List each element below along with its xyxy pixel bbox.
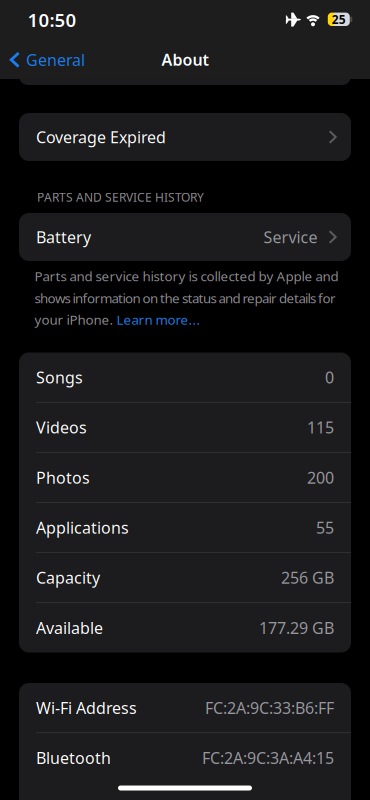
- staticText: Battery: [36, 226, 91, 248]
- staticText: Photos: [36, 467, 90, 488]
- staticText: Available: [36, 617, 103, 638]
- button[interactable]: General: [10, 49, 85, 70]
- staticText: Applications: [36, 517, 129, 538]
- staticText: General: [26, 49, 85, 70]
- button[interactable]: Coverage Expired: [19, 113, 351, 161]
- staticText: FC:2A:9C:3A:A4:15: [202, 747, 334, 768]
- staticText: Wi-Fi Address: [36, 697, 137, 718]
- staticText: Parts and service history is collected b…: [34, 267, 338, 285]
- staticText: 256 GB: [281, 567, 334, 588]
- staticText: FC:2A:9C:33:B6:FF: [205, 697, 334, 718]
- button[interactable]: Learn more...: [116, 311, 200, 328]
- staticText: Learn more...: [116, 311, 200, 328]
- staticText: Service: [263, 226, 317, 248]
- staticText: Capacity: [36, 567, 100, 588]
- staticText: PARTS AND SERVICE HISTORY: [37, 189, 204, 205]
- staticText: 177.29 GB: [259, 617, 334, 638]
- staticText: 0: [325, 367, 334, 388]
- staticText: 10:50: [27, 7, 76, 32]
- staticText: your iPhone.: [34, 311, 116, 328]
- staticText: Bluetooth: [36, 747, 111, 768]
- staticText: 25: [332, 11, 346, 27]
- staticText: Coverage Expired: [36, 126, 166, 148]
- staticText: 200: [307, 467, 334, 488]
- staticText: 55: [316, 517, 334, 538]
- staticText: Songs: [36, 367, 83, 388]
- staticText: shows information on the status and repa…: [34, 289, 336, 307]
- staticText: About: [161, 49, 208, 70]
- staticText: Videos: [36, 417, 87, 438]
- button[interactable]: Battery: [19, 213, 351, 261]
- staticText: 115: [307, 417, 334, 438]
